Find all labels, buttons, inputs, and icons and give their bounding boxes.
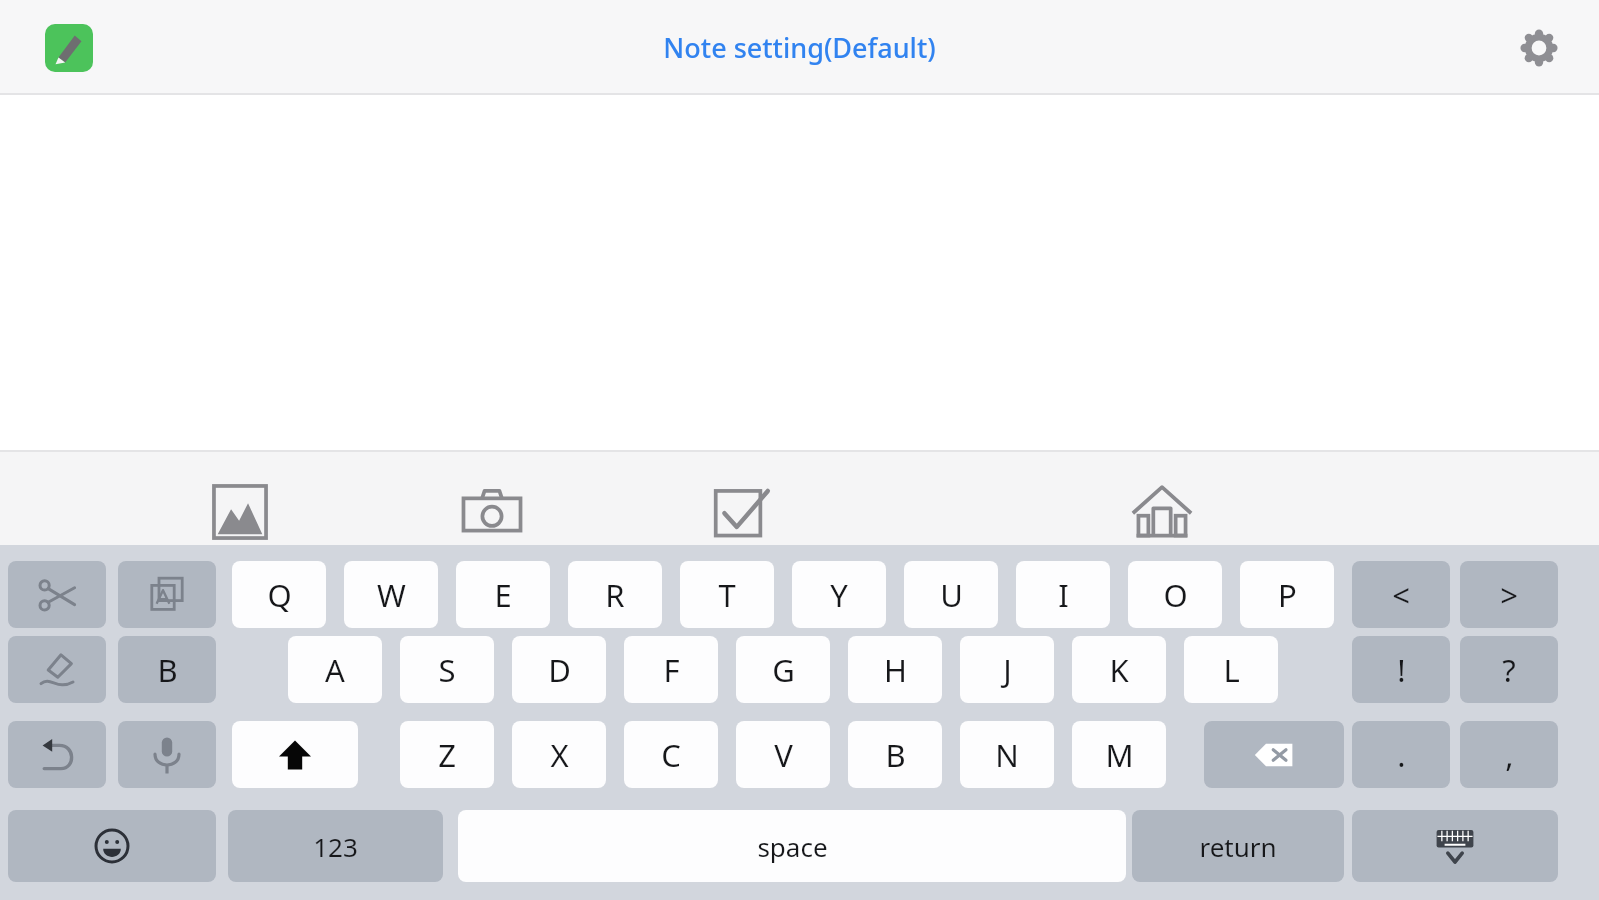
button[interactable]: . [1352, 721, 1450, 788]
button[interactable]: P [1240, 561, 1334, 628]
button[interactable]: Highlight [8, 636, 106, 703]
staticText: K [1109, 649, 1129, 691]
button[interactable]: Voice input [118, 721, 216, 788]
staticText: > [1500, 574, 1518, 616]
button[interactable]: > [1460, 561, 1558, 628]
staticText: space [757, 829, 828, 864]
button[interactable]: C [624, 721, 718, 788]
button[interactable]: 123 [228, 810, 443, 882]
button[interactable]: Z [400, 721, 494, 788]
staticText: . [1397, 734, 1406, 776]
staticText: C [661, 734, 681, 776]
staticText: V [774, 734, 793, 776]
staticText: B [157, 649, 178, 691]
button[interactable]: , [1460, 721, 1558, 788]
button[interactable]: N [960, 721, 1054, 788]
button[interactable]: Emoji [8, 810, 216, 882]
button[interactable]: Copy [118, 561, 216, 628]
staticText: G [772, 649, 795, 691]
button[interactable]: E [456, 561, 550, 628]
button[interactable]: Hide keyboard [1352, 810, 1558, 882]
staticText: , [1505, 734, 1514, 776]
staticText: A [325, 649, 345, 691]
button[interactable]: K [1072, 636, 1166, 703]
staticText: U [940, 574, 963, 616]
button[interactable]: R [568, 561, 662, 628]
staticText: Z [438, 734, 456, 776]
staticText: D [548, 649, 571, 691]
staticText: Q [267, 574, 292, 616]
staticText: M [1105, 734, 1134, 776]
button[interactable]: ? [1460, 636, 1558, 703]
button[interactable]: W [344, 561, 438, 628]
staticText: Note setting(Default) [663, 29, 936, 66]
button[interactable]: return [1132, 810, 1344, 882]
button[interactable]: M [1072, 721, 1166, 788]
button[interactable]: Shift [232, 721, 358, 788]
button[interactable]: < [1352, 561, 1450, 628]
button[interactable]: O [1128, 561, 1222, 628]
button[interactable]: Note app [45, 24, 93, 72]
staticText: 123 [313, 829, 358, 864]
button[interactable]: B [118, 636, 216, 703]
button[interactable]: D [512, 636, 606, 703]
staticText: T [718, 574, 736, 616]
staticText: X [550, 734, 569, 776]
staticText: F [663, 649, 680, 691]
button[interactable]: Home [1122, 472, 1202, 552]
staticText: W [377, 574, 406, 616]
staticText: Y [830, 574, 848, 616]
staticText: E [494, 574, 512, 616]
button[interactable]: I [1016, 561, 1110, 628]
staticText: ? [1502, 649, 1516, 691]
staticText: P [1278, 574, 1297, 616]
staticText: N [995, 734, 1019, 776]
staticText: return [1199, 829, 1277, 864]
button[interactable]: B [848, 721, 942, 788]
button[interactable]: G [736, 636, 830, 703]
button[interactable]: T [680, 561, 774, 628]
staticText: ! [1397, 649, 1406, 691]
button[interactable]: Y [792, 561, 886, 628]
button[interactable]: V [736, 721, 830, 788]
staticText: H [884, 649, 907, 691]
button[interactable]: H [848, 636, 942, 703]
staticText: R [605, 574, 625, 616]
button[interactable]: Backspace [1204, 721, 1344, 788]
staticText: < [1392, 574, 1410, 616]
button[interactable]: U [904, 561, 998, 628]
button[interactable]: Checklist [703, 472, 783, 552]
staticText: S [438, 649, 456, 691]
staticText: O [1163, 574, 1188, 616]
button[interactable]: space [458, 810, 1126, 882]
button[interactable]: Insert image [200, 472, 280, 552]
button[interactable]: F [624, 636, 718, 703]
button[interactable]: Camera [452, 472, 532, 552]
button[interactable]: Cut [8, 561, 106, 628]
button[interactable]: X [512, 721, 606, 788]
staticText: B [885, 734, 906, 776]
button[interactable]: L [1184, 636, 1278, 703]
button[interactable]: Q [232, 561, 326, 628]
button[interactable]: S [400, 636, 494, 703]
staticText: L [1223, 649, 1240, 691]
staticText: J [1003, 649, 1012, 691]
button[interactable]: Undo [8, 721, 106, 788]
button[interactable]: A [288, 636, 382, 703]
staticText: I [1058, 574, 1069, 616]
button[interactable]: J [960, 636, 1054, 703]
button[interactable]: ! [1352, 636, 1450, 703]
button[interactable]: Settings [1512, 21, 1566, 75]
